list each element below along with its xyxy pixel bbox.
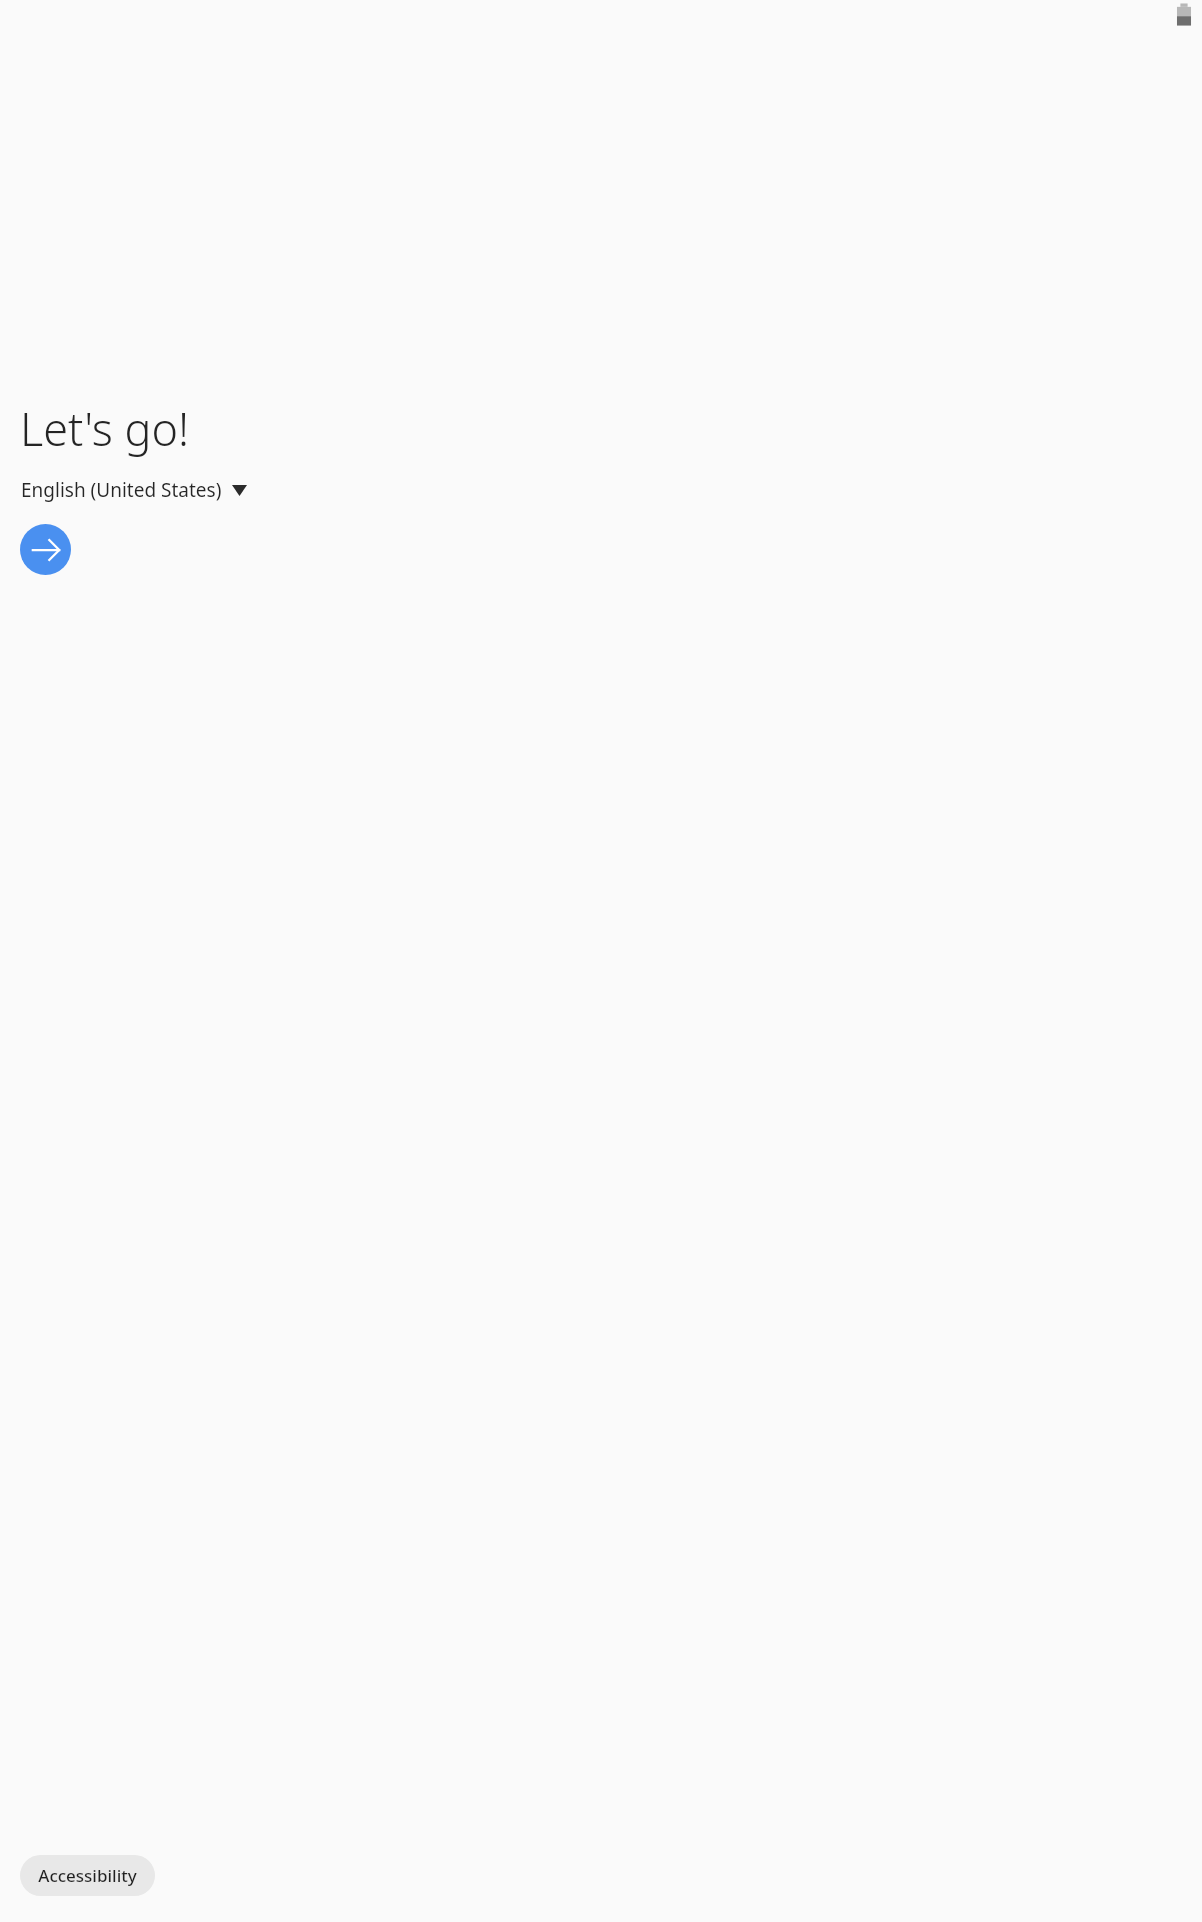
button[interactable]: English (United States) <box>20 473 248 507</box>
button[interactable]: Accessibility <box>20 1855 155 1896</box>
button[interactable]: Next <box>20 524 71 575</box>
staticText: Accessibility <box>38 1864 137 1887</box>
staticText: Let's go! <box>20 398 190 459</box>
other: Battery <box>1175 3 1193 27</box>
staticText: English (United States) <box>21 477 222 503</box>
